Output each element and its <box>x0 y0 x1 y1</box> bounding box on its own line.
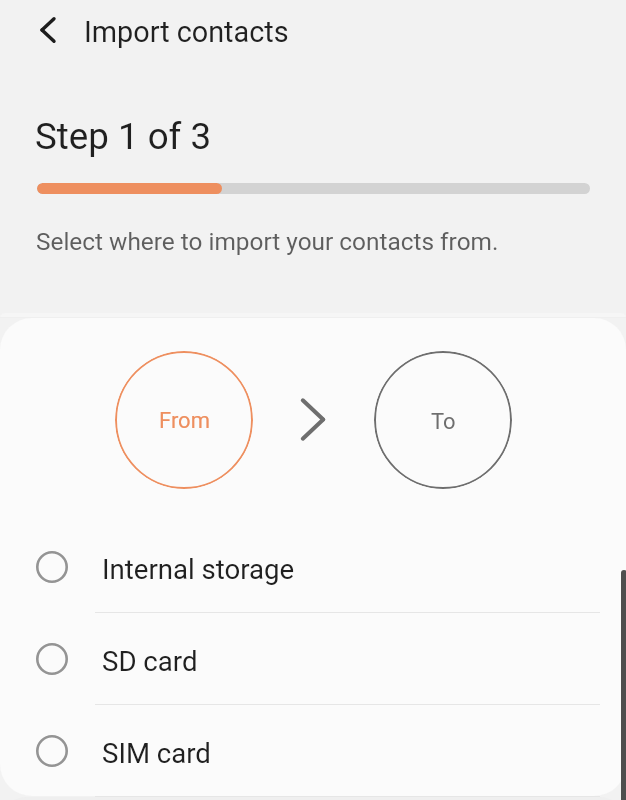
button[interactable]: SIM card <box>0 705 626 796</box>
button[interactable]: From <box>115 351 253 489</box>
staticText: Step 1 of 3 <box>35 115 212 158</box>
staticText: Internal storage <box>102 553 295 585</box>
button[interactable]: To <box>374 351 512 489</box>
staticText: Import contacts <box>84 15 289 49</box>
staticText: Select where to import your contacts fro… <box>36 227 499 256</box>
button[interactable]: Back <box>24 6 72 54</box>
staticText: From <box>159 408 210 434</box>
other: From source to destination <box>300 397 326 442</box>
button[interactable]: Internal storage <box>0 521 626 612</box>
staticText: SD card <box>102 645 198 677</box>
staticText: To <box>431 409 456 435</box>
staticText: SIM card <box>102 737 211 769</box>
button[interactable]: SD card <box>0 613 626 704</box>
